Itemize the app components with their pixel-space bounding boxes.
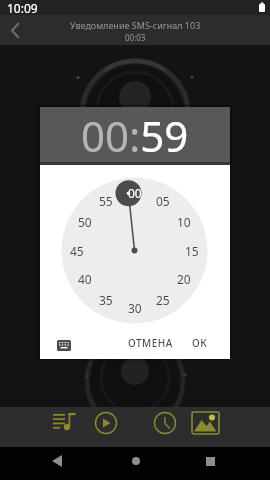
staticText: ОТМЕНА [128, 336, 173, 350]
button[interactable] [37, 447, 77, 480]
staticText: 10:09 [7, 0, 38, 15]
button[interactable] [145, 407, 185, 443]
button[interactable] [86, 407, 126, 443]
button[interactable] [185, 407, 225, 443]
staticText: 20 [177, 271, 191, 287]
button[interactable] [190, 447, 230, 480]
button[interactable]: ОТМЕНА [125, 335, 175, 351]
staticText: 10 [177, 214, 191, 230]
staticText: 40 [78, 271, 92, 287]
staticText: 00 [128, 185, 142, 201]
button[interactable] [116, 447, 156, 480]
staticText: 30 [128, 300, 142, 316]
staticText: 25 [156, 292, 170, 308]
button[interactable]: Уведомление SMS-сигнал 103 [0, 15, 270, 45]
staticText: 15 [185, 243, 199, 259]
staticText: 45 [70, 243, 84, 259]
button[interactable] [46, 407, 86, 443]
staticText: 50 [78, 214, 92, 230]
staticText: 05 [156, 193, 170, 209]
button[interactable] [50, 333, 78, 359]
staticText: ОК [192, 336, 208, 350]
staticText: Уведомление SMS-сигнал 103 [70, 19, 201, 31]
staticText: 35 [99, 292, 113, 308]
staticText: 00:59 [81, 107, 189, 162]
staticText: 55 [99, 193, 113, 209]
button[interactable]: ОК [184, 335, 216, 351]
staticText: 00:03 [125, 32, 146, 43]
